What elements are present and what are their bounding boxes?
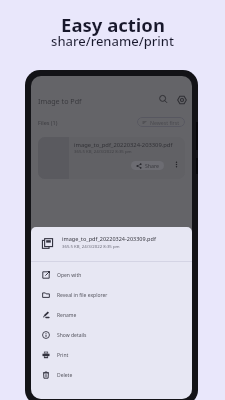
button[interactable]: Settings bbox=[176, 94, 188, 106]
staticText: Easy action bbox=[61, 12, 165, 37]
button[interactable]: Search bbox=[158, 94, 169, 105]
staticText: Share bbox=[145, 162, 159, 169]
staticText: Print bbox=[57, 352, 69, 359]
staticText: Files (1) bbox=[38, 119, 58, 126]
button[interactable]: Newest first bbox=[137, 117, 185, 127]
staticText: Show details bbox=[57, 332, 87, 339]
staticText: image_to_pdf_20220324-203309.pdf bbox=[74, 141, 173, 149]
staticText: Newest first bbox=[150, 119, 180, 126]
button[interactable]: Reveal in file explorer bbox=[31, 285, 192, 305]
staticText: Open with bbox=[57, 272, 82, 279]
staticText: image_to_pdf_20220324-203309.pdf bbox=[62, 235, 156, 242]
staticText: 365.5 KB, 24/3/2022 8:35 pm bbox=[62, 243, 120, 249]
staticText: Image to Pdf bbox=[38, 96, 82, 106]
button[interactable]: Share bbox=[131, 161, 164, 170]
button[interactable]: image_to_pdf_20220324-203309.pdf bbox=[31, 227, 192, 261]
button[interactable]: Rename bbox=[31, 305, 192, 325]
button[interactable]: More options bbox=[172, 160, 181, 169]
button[interactable]: Show details bbox=[31, 325, 192, 345]
staticText: 365.5 KB, 24/3/2022 8:35 pm bbox=[74, 148, 132, 154]
button[interactable]: Open with bbox=[31, 265, 192, 285]
button[interactable]: Print bbox=[31, 345, 192, 365]
staticText: Reveal in file explorer bbox=[57, 292, 108, 299]
staticText: Rename bbox=[57, 312, 77, 319]
button[interactable]: Delete bbox=[31, 365, 192, 385]
button[interactable]: image_to_pdf_20220324-203309.pdf bbox=[38, 137, 185, 179]
staticText: share/rename/print bbox=[51, 32, 174, 50]
button[interactable]: Image to Pdf bbox=[33, 91, 87, 111]
staticText: Delete bbox=[57, 372, 73, 379]
